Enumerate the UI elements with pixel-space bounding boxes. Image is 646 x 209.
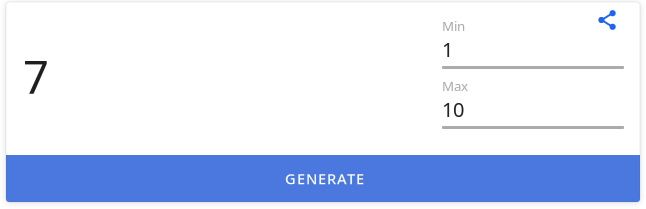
staticText: 7: [23, 46, 49, 106]
staticText: 1: [442, 36, 453, 63]
button[interactable]: GENERATE: [6, 155, 640, 202]
staticText: GENERATE: [285, 169, 364, 188]
button[interactable]: Share: [588, 2, 624, 36]
button[interactable]: Max: [442, 77, 624, 129]
button[interactable]: Min: [442, 17, 624, 69]
staticText: Min: [442, 17, 465, 35]
staticText: Max: [442, 77, 468, 95]
staticText: 10: [442, 96, 464, 123]
